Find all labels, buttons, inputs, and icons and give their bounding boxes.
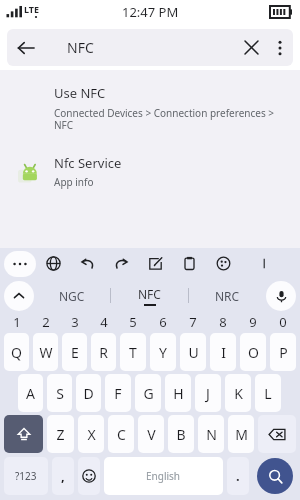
button[interactable]: Undo [70, 248, 104, 279]
button[interactable]: Emoji [78, 457, 100, 495]
button[interactable]: Nfc Service [0, 154, 300, 189]
staticText: L [264, 384, 272, 403]
staticText: NRC [215, 288, 240, 304]
button[interactable]: 7 [178, 312, 208, 332]
staticText: 1 [13, 313, 21, 331]
staticText: 9 [249, 313, 257, 331]
button[interactable]: U [180, 333, 206, 371]
button[interactable]: J [195, 374, 221, 412]
staticText: Connected Devices > Connection preferenc… [54, 106, 286, 132]
staticText: D [83, 384, 94, 403]
staticText: App info [54, 175, 94, 189]
staticText: Z [56, 425, 65, 444]
button[interactable]: E [62, 333, 87, 371]
staticText: N [206, 425, 217, 444]
button[interactable]: 9 [238, 312, 268, 332]
button[interactable]: V [138, 415, 164, 453]
button[interactable]: R [91, 333, 116, 371]
button[interactable]: 0 [268, 312, 298, 332]
button[interactable]: More toolbar options [4, 251, 36, 277]
button[interactable]: G [135, 374, 161, 412]
staticText: O [248, 343, 259, 362]
button[interactable]: S [47, 374, 72, 412]
button[interactable]: Back [7, 29, 45, 66]
staticText: C [117, 425, 126, 444]
button[interactable]: Z [47, 415, 74, 453]
button[interactable]: 4 [89, 312, 118, 332]
staticText: R [99, 343, 108, 362]
button[interactable]: Edit text [138, 248, 172, 279]
button[interactable]: . [227, 457, 249, 495]
button[interactable]: I [210, 333, 236, 371]
button[interactable]: 2 [31, 312, 60, 332]
staticText: ?123 [15, 469, 37, 483]
staticText: B [176, 425, 186, 444]
button[interactable]: M [228, 415, 254, 453]
button[interactable]: , [52, 457, 74, 495]
button[interactable]: Expand suggestions [4, 281, 34, 311]
button[interactable]: Language [36, 248, 70, 279]
button[interactable]: W [33, 333, 58, 371]
staticText: 12:47 PM [122, 3, 179, 21]
button[interactable]: 6 [148, 312, 178, 332]
staticText: Use NFC [54, 84, 106, 102]
button[interactable]: P [270, 333, 296, 371]
button[interactable]: 1 [2, 312, 31, 332]
button[interactable]: Y [150, 333, 176, 371]
staticText: V [147, 425, 156, 444]
button[interactable]: NGC [34, 279, 110, 312]
staticText: Q [11, 343, 22, 362]
staticText: T [129, 343, 137, 362]
button[interactable]: T [120, 333, 146, 371]
staticText: J [206, 384, 210, 403]
button[interactable]: Theme [206, 248, 240, 279]
button[interactable]: A [18, 374, 43, 412]
staticText: Nfc Service [54, 154, 122, 172]
staticText: H [173, 384, 184, 403]
button[interactable]: F [105, 374, 131, 412]
button[interactable]: 5 [118, 312, 148, 332]
button[interactable]: NRC [189, 279, 266, 312]
button[interactable]: Backspace [258, 415, 296, 453]
button[interactable]: English [104, 457, 223, 495]
staticText: English [146, 469, 181, 483]
button[interactable]: 8 [208, 312, 238, 332]
button[interactable]: Search [257, 458, 293, 494]
staticText: 3 [71, 313, 79, 331]
button[interactable]: X [78, 415, 104, 453]
button[interactable]: ?123 [4, 457, 48, 495]
button[interactable]: Redo [104, 248, 138, 279]
staticText: A [26, 384, 35, 403]
staticText: U [188, 343, 199, 362]
staticText: 4 [100, 313, 108, 331]
button[interactable]: Settings [240, 248, 274, 279]
button[interactable]: Use NFC [0, 82, 300, 134]
staticText: NGC [59, 288, 85, 304]
button[interactable]: Q [4, 333, 29, 371]
staticText: Y [159, 343, 167, 362]
button[interactable]: B [168, 415, 194, 453]
button[interactable]: Clear search [235, 29, 267, 66]
button[interactable]: Shift [4, 415, 43, 453]
staticText: 7 [189, 313, 197, 331]
staticText: P [279, 343, 288, 362]
button[interactable]: More options [267, 29, 293, 66]
staticText: NFC [138, 286, 161, 302]
staticText: 8 [219, 313, 227, 331]
button[interactable]: D [76, 374, 101, 412]
button[interactable]: Voice input [266, 281, 296, 311]
button[interactable]: O [240, 333, 266, 371]
button[interactable]: H [165, 374, 191, 412]
button[interactable]: 3 [60, 312, 89, 332]
button[interactable]: K [225, 374, 251, 412]
button[interactable]: NFC [111, 279, 188, 312]
button[interactable]: L [255, 374, 281, 412]
button[interactable]: N [198, 415, 224, 453]
staticText: W [39, 343, 53, 362]
staticText: E [71, 343, 79, 362]
button[interactable]: Clipboard [172, 248, 206, 279]
staticText: I [221, 343, 226, 362]
staticText: F [114, 384, 122, 403]
button[interactable]: C [108, 415, 134, 453]
staticText: G [143, 384, 154, 403]
